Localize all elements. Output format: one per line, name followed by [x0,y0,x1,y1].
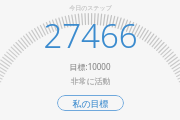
staticText: 非常に活動 [70,76,111,86]
staticText: 27466 [43,13,138,58]
staticText: 私の目標 [72,98,109,109]
staticText: 目標:10000 [69,61,111,72]
staticText: 今日のステップ [69,4,112,12]
button[interactable]: 私の目標 [57,95,124,111]
